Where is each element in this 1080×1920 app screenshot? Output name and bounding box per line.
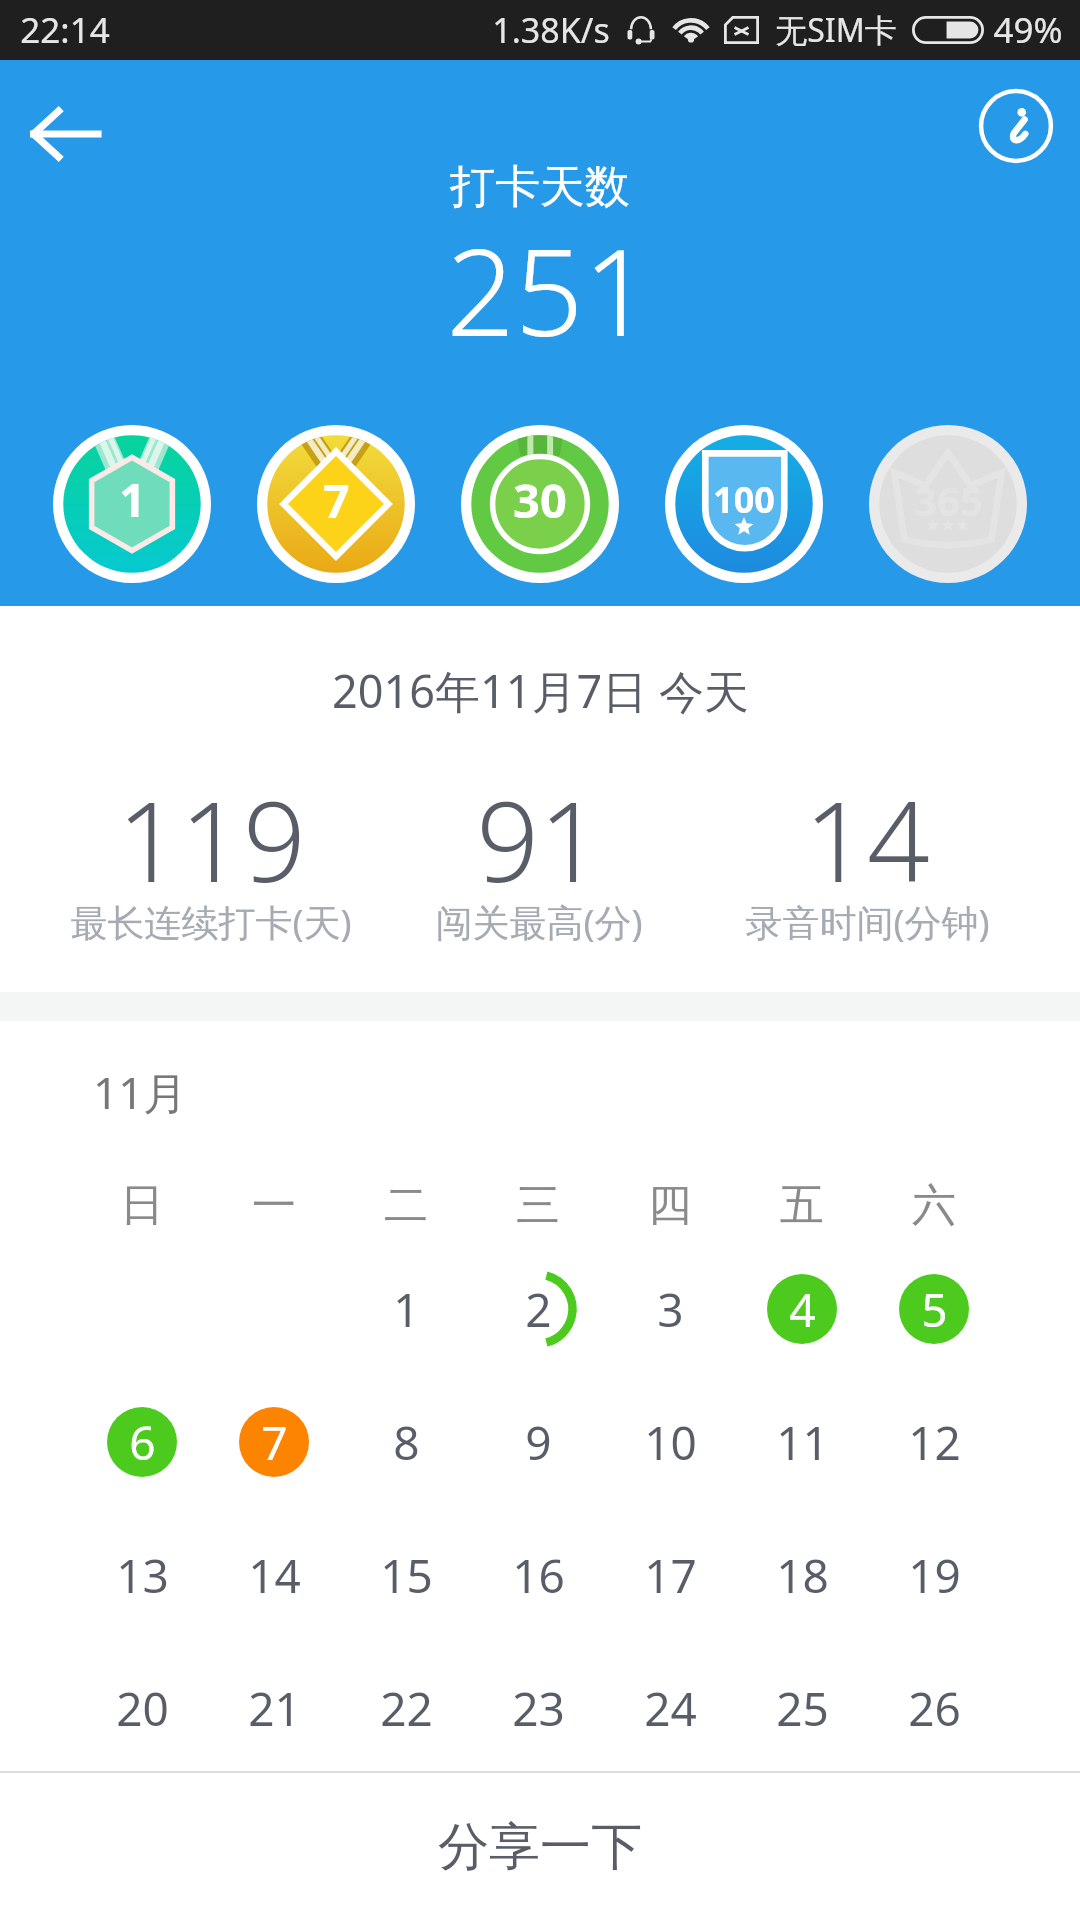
staticText: 2 xyxy=(525,1278,552,1341)
staticText: 1.38K/s xyxy=(492,7,610,53)
button[interactable]: 20 xyxy=(75,1641,208,1774)
staticText: 最长连续打卡(天) xyxy=(70,896,352,947)
button[interactable]: 13 xyxy=(75,1508,208,1641)
button[interactable]: 30 day badge xyxy=(461,425,619,583)
button[interactable]: 11 xyxy=(736,1375,868,1508)
staticText: 30 xyxy=(513,468,567,532)
button[interactable]: 17 xyxy=(604,1508,736,1641)
staticText: 20 xyxy=(116,1677,169,1740)
button[interactable]: 365 day badge xyxy=(869,425,1027,583)
staticText: 14 xyxy=(804,764,930,914)
staticText: 23 xyxy=(512,1677,565,1740)
staticText: 3 xyxy=(657,1278,684,1341)
staticText: 22:14 xyxy=(20,6,110,54)
button[interactable]: 12 xyxy=(894,1402,974,1482)
staticText: 六 xyxy=(912,1178,956,1233)
button[interactable]: 18 xyxy=(736,1508,868,1641)
button[interactable]: 6 xyxy=(75,1375,208,1508)
staticText: 5 xyxy=(921,1278,948,1341)
button[interactable]: 21 xyxy=(234,1668,314,1748)
button[interactable]: 26 xyxy=(894,1668,974,1748)
button[interactable]: 分享一下 xyxy=(0,1773,1080,1920)
staticText: 8 xyxy=(393,1411,420,1474)
button[interactable]: 100 day badge xyxy=(665,425,823,583)
button[interactable]: 9 xyxy=(498,1402,578,1482)
button[interactable]: 21 xyxy=(208,1641,340,1774)
button[interactable]: 3 xyxy=(604,1242,736,1375)
staticText: 18 xyxy=(776,1544,829,1607)
button[interactable]: 26 xyxy=(868,1641,1000,1774)
button[interactable]: 4 xyxy=(736,1242,868,1375)
button[interactable]: 25 xyxy=(762,1668,842,1748)
button[interactable]: 1 xyxy=(340,1242,472,1375)
button[interactable]: 11 xyxy=(762,1402,842,1482)
staticText: 17 xyxy=(644,1544,697,1607)
button[interactable]: 5 xyxy=(894,1269,974,1349)
button[interactable]: 19 xyxy=(868,1508,1000,1641)
staticText: 26 xyxy=(908,1677,961,1740)
staticText: 119 xyxy=(117,764,306,914)
staticText: 四 xyxy=(648,1178,692,1233)
button[interactable]: 24 xyxy=(630,1668,710,1748)
staticText: 分享一下 xyxy=(438,1815,642,1879)
staticText: 11月 xyxy=(93,1062,188,1122)
staticText: 49% xyxy=(993,6,1063,54)
button[interactable]: 10 xyxy=(630,1402,710,1482)
staticText: 4 xyxy=(789,1278,816,1341)
staticText: 15 xyxy=(380,1544,433,1607)
staticText: 10 xyxy=(644,1411,697,1474)
button[interactable]: 18 xyxy=(762,1535,842,1615)
staticText: 录音时间(分钟) xyxy=(745,896,990,947)
button[interactable]: 22 xyxy=(366,1668,446,1748)
button[interactable]: 4 xyxy=(762,1269,842,1349)
button[interactable]: 20 xyxy=(102,1668,182,1748)
button[interactable]: 17 xyxy=(630,1535,710,1615)
button[interactable]: 5 xyxy=(868,1242,1000,1375)
button[interactable]: 22 xyxy=(340,1641,472,1774)
button[interactable]: 13 xyxy=(102,1535,182,1615)
staticText: 24 xyxy=(644,1677,697,1740)
button[interactable]: 6 xyxy=(102,1402,182,1482)
staticText: 91 xyxy=(476,764,602,914)
button[interactable]: 19 xyxy=(894,1535,974,1615)
staticText: 1 xyxy=(393,1278,420,1341)
button[interactable]: 10 xyxy=(604,1375,736,1508)
button[interactable]: 7 day badge xyxy=(257,425,415,583)
button[interactable]: 15 xyxy=(340,1508,472,1641)
button[interactable]: 25 xyxy=(736,1641,868,1774)
button[interactable]: 2 xyxy=(498,1269,578,1349)
staticText: 7 xyxy=(261,1411,288,1474)
button[interactable]: 24 xyxy=(604,1641,736,1774)
button[interactable]: 1 xyxy=(366,1269,446,1349)
staticText: 五 xyxy=(780,1178,824,1233)
button[interactable]: 7 xyxy=(208,1375,340,1508)
button[interactable]: Back xyxy=(0,79,128,189)
staticText: 二 xyxy=(384,1178,428,1233)
staticText: 14 xyxy=(248,1544,301,1607)
button[interactable]: 14 xyxy=(208,1508,340,1641)
button[interactable]: 7 xyxy=(234,1402,314,1482)
button[interactable]: 3 xyxy=(630,1269,710,1349)
staticText: 1 xyxy=(119,468,146,531)
button[interactable]: 23 xyxy=(498,1668,578,1748)
button[interactable]: 16 xyxy=(472,1508,604,1641)
staticText: 无SIM卡 xyxy=(775,8,897,52)
button[interactable]: 15 xyxy=(366,1535,446,1615)
staticText: 16 xyxy=(512,1544,565,1607)
staticText: 一 xyxy=(252,1178,296,1233)
button[interactable]: 1 day badge xyxy=(53,425,211,583)
staticText: 7 xyxy=(323,469,350,532)
button[interactable]: 8 xyxy=(366,1402,446,1482)
button[interactable]: 12 xyxy=(868,1375,1000,1508)
button[interactable]: 2 xyxy=(472,1242,604,1375)
button[interactable]: 9 xyxy=(472,1375,604,1508)
button[interactable]: 23 xyxy=(472,1641,604,1774)
button[interactable]: 16 xyxy=(498,1535,578,1615)
button[interactable]: Info xyxy=(978,88,1054,164)
staticText: 12 xyxy=(908,1411,961,1474)
staticText: 三 xyxy=(516,1178,560,1233)
button[interactable]: 14 xyxy=(234,1535,314,1615)
button[interactable]: 8 xyxy=(340,1375,472,1508)
staticText: 11 xyxy=(776,1411,829,1474)
staticText: 13 xyxy=(116,1544,169,1607)
